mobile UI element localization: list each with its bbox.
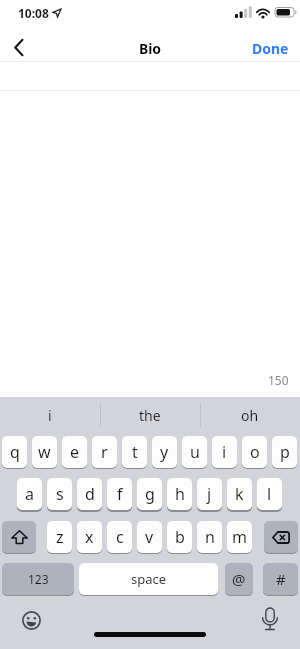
staticText: @ (232, 569, 246, 589)
button[interactable]: 123 (2, 563, 74, 595)
button[interactable]: q (2, 436, 27, 468)
button[interactable]: v (137, 521, 162, 553)
button[interactable]: f (107, 478, 132, 510)
button[interactable] (6, 34, 32, 60)
button[interactable]: t (122, 436, 147, 468)
staticText: p (280, 441, 290, 463)
button[interactable]: y (152, 436, 177, 468)
staticText: r (101, 441, 108, 463)
button[interactable]: # (263, 563, 298, 595)
button[interactable]: i (212, 436, 237, 468)
staticText: Done (252, 39, 289, 58)
button[interactable] (19, 608, 43, 632)
staticText: f (117, 483, 123, 505)
staticText: i (48, 406, 52, 425)
button[interactable]: Done (252, 39, 289, 58)
staticText: oh (241, 406, 259, 425)
staticText: z (56, 526, 64, 548)
button[interactable]: h (167, 478, 192, 510)
button[interactable]: k (227, 478, 252, 510)
staticText: Bio (0, 39, 300, 58)
staticText: h (175, 483, 185, 505)
staticText: n (205, 526, 215, 548)
staticText: space (131, 570, 167, 588)
button[interactable]: d (77, 478, 102, 510)
staticText: a (25, 483, 34, 505)
button[interactable]: oh (200, 397, 300, 434)
staticText: m (232, 526, 247, 548)
button[interactable]: i (0, 397, 100, 434)
staticText: g (145, 483, 155, 505)
button[interactable]: j (197, 478, 222, 510)
button[interactable]: e (62, 436, 87, 468)
button[interactable]: b (167, 521, 192, 553)
button[interactable]: w (32, 436, 57, 468)
staticText: x (85, 526, 94, 548)
button[interactable] (2, 521, 36, 553)
staticText: i (222, 441, 227, 463)
staticText: e (70, 441, 80, 463)
staticText: o (250, 441, 260, 463)
staticText: s (56, 483, 64, 505)
button[interactable]: p (272, 436, 297, 468)
staticText: v (145, 526, 154, 548)
staticText: c (116, 526, 124, 548)
staticText: l (267, 483, 272, 505)
button[interactable]: z (47, 521, 72, 553)
button[interactable]: r (92, 436, 117, 468)
staticText: the (139, 406, 161, 425)
button[interactable]: a (17, 478, 42, 510)
staticText: d (85, 483, 95, 505)
staticText: j (207, 483, 212, 505)
staticText: u (190, 441, 200, 463)
staticText: 123 (28, 571, 49, 587)
button[interactable]: the (100, 397, 200, 434)
staticText: y (160, 441, 169, 463)
button[interactable] (264, 521, 298, 553)
button[interactable]: x (77, 521, 102, 553)
button[interactable]: m (227, 521, 252, 553)
button[interactable]: g (137, 478, 162, 510)
button[interactable] (258, 605, 282, 635)
staticText: t (132, 441, 138, 463)
staticText: 150 (268, 372, 289, 388)
button[interactable]: c (107, 521, 132, 553)
button[interactable]: @ (225, 563, 253, 595)
button[interactable]: n (197, 521, 222, 553)
staticText: # (276, 569, 286, 589)
staticText: w (38, 441, 51, 463)
staticText: q (10, 441, 20, 463)
button[interactable]: u (182, 436, 207, 468)
button[interactable]: space (79, 563, 218, 595)
staticText: b (175, 526, 185, 548)
button[interactable]: l (257, 478, 282, 510)
staticText: 10:08 (18, 5, 49, 21)
button[interactable]: s (47, 478, 72, 510)
staticText: k (235, 483, 244, 505)
button[interactable]: o (242, 436, 267, 468)
